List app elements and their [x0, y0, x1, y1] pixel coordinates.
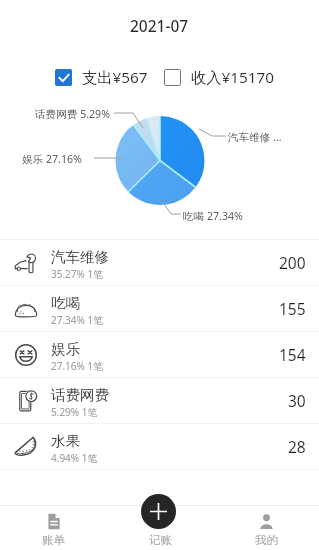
button[interactable]: 支出¥567 — [55, 67, 148, 88]
button[interactable]: 记账 — [141, 494, 176, 529]
staticText: 154 — [279, 344, 306, 365]
staticText: 27.16% 1笔 — [51, 359, 104, 373]
button[interactable]: 话费网费 — [0, 378, 319, 423]
staticText: 吃喝 27.34% — [183, 209, 243, 223]
staticText: 收入¥15170 — [191, 67, 275, 88]
staticText: 200 — [279, 252, 306, 273]
button[interactable]: 账单 — [0, 505, 107, 550]
button[interactable]: 吃喝 — [0, 286, 319, 331]
staticText: 支出¥567 — [82, 67, 148, 88]
staticText: 汽车维修 — [51, 248, 109, 266]
staticText: 吃喝 — [51, 294, 80, 312]
staticText: 4.94% 1笔 — [51, 451, 98, 465]
button[interactable]: 记账 — [107, 505, 213, 550]
staticText: 话费网费 5.29% — [35, 107, 110, 121]
staticText: 155 — [279, 298, 306, 319]
staticText: 账单 — [42, 533, 65, 547]
staticText: 2021-07 — [130, 15, 189, 36]
staticText: 30 — [288, 390, 306, 411]
staticText: 5.29% 1笔 — [51, 405, 98, 419]
button[interactable]: 水果 — [0, 424, 319, 469]
button[interactable]: 我的 — [213, 505, 319, 550]
staticText: 话费网费 — [51, 386, 109, 404]
staticText: 我的 — [255, 533, 278, 547]
staticText: 35.27% 1笔 — [51, 267, 104, 281]
staticText: 记账 — [149, 533, 172, 547]
button[interactable]: 娱乐 — [0, 332, 319, 377]
staticText: 娱乐 — [51, 340, 80, 358]
staticText: 娱乐 27.16% — [22, 152, 82, 166]
staticText: 汽车维修 ... — [228, 130, 282, 144]
staticText: 27.34% 1笔 — [51, 313, 104, 327]
button[interactable]: 收入¥15170 — [164, 67, 275, 88]
button[interactable]: 汽车维修 — [0, 240, 319, 285]
staticText: 水果 — [51, 432, 80, 450]
staticText: 28 — [288, 436, 306, 457]
